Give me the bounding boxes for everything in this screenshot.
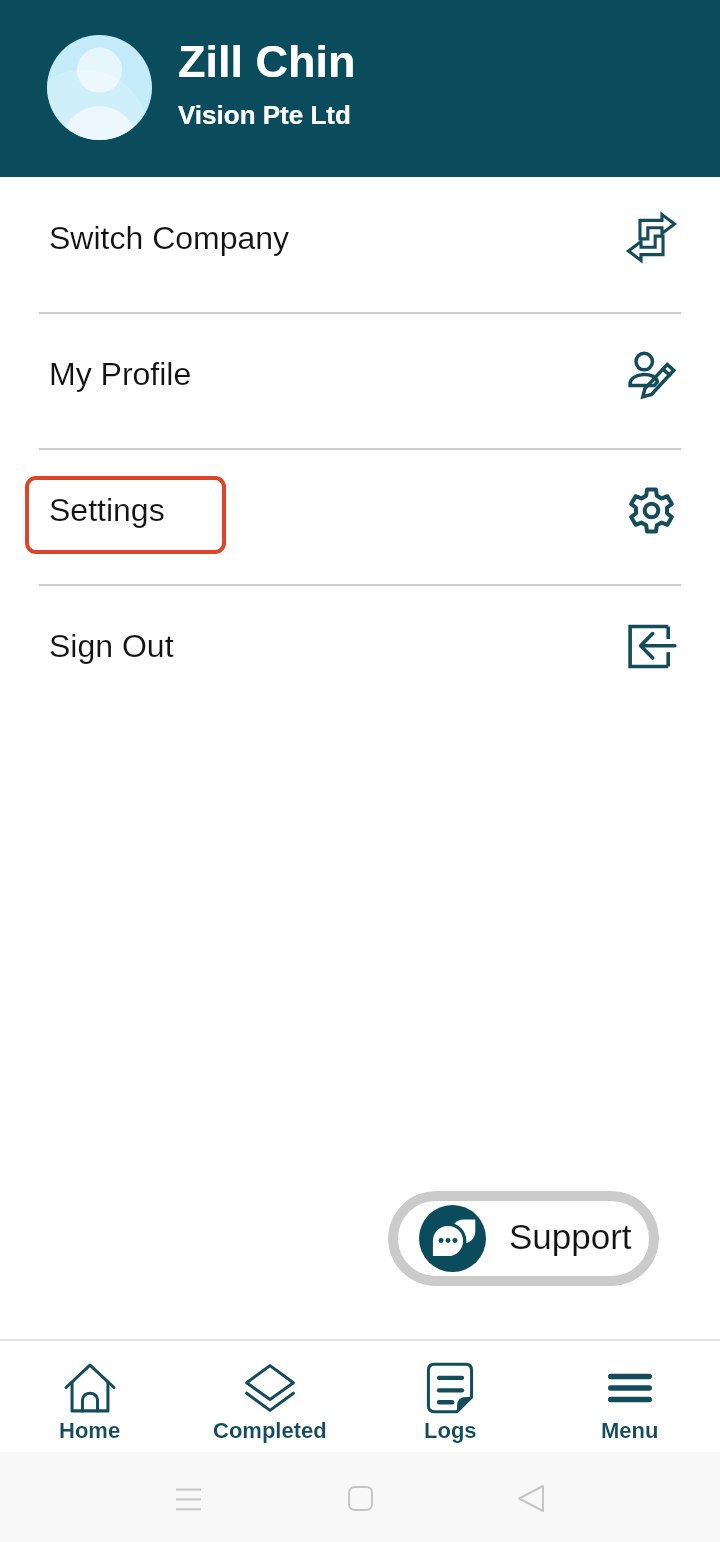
button[interactable]: Switch Company: [0, 177, 720, 312]
staticText: Home: [59, 1418, 121, 1443]
staticText: Menu: [601, 1418, 659, 1443]
button[interactable]: Logs: [360, 1339, 540, 1452]
staticText: Support: [509, 1217, 632, 1256]
other: Home: [348, 1486, 373, 1511]
button[interactable]: Menu: [540, 1339, 720, 1452]
other: Settings: [628, 487, 675, 534]
button[interactable]: Support: [388, 1191, 659, 1286]
staticText: Switch Company: [49, 220, 290, 256]
staticText: My Profile: [49, 356, 192, 392]
button[interactable]: Settings: [0, 450, 720, 584]
other: Sign Out: [628, 623, 675, 670]
other: Switch Company: [628, 214, 675, 261]
other: Back: [518, 1485, 544, 1512]
button[interactable]: Home: [0, 1339, 180, 1452]
staticText: Completed: [213, 1418, 327, 1443]
staticText: Settings: [49, 492, 165, 528]
staticText: Zill Chin: [178, 36, 356, 86]
staticText: Logs: [424, 1418, 477, 1443]
button[interactable]: Sign Out: [0, 586, 720, 720]
staticText: Sign Out: [49, 628, 174, 664]
button[interactable]: Completed: [180, 1339, 360, 1452]
staticText: Vision Pte Ltd: [178, 100, 351, 129]
button[interactable]: My Profile: [0, 314, 720, 448]
other: Recents: [176, 1488, 201, 1510]
other: My Profile: [628, 351, 675, 398]
